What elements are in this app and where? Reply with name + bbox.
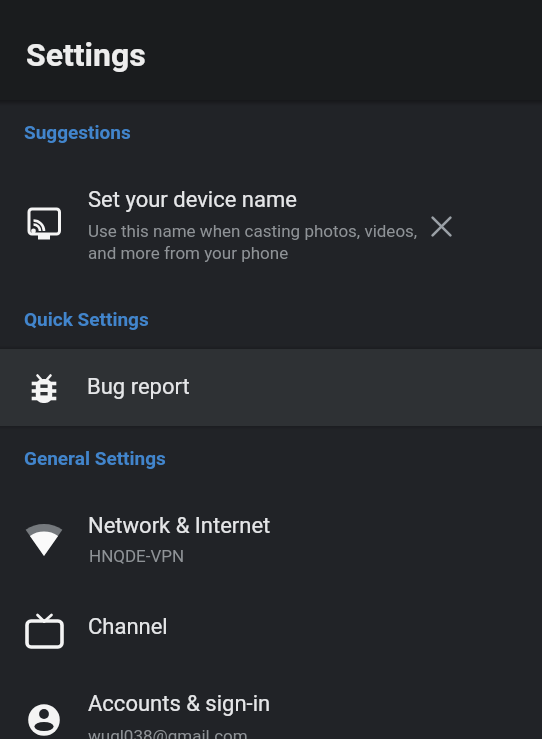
staticText: Channel bbox=[88, 614, 168, 640]
staticText: Accounts & sign-in bbox=[88, 691, 271, 717]
staticText: Use this name when casting photos, video… bbox=[88, 221, 418, 241]
staticText: wugl038@gmail.com bbox=[88, 726, 248, 739]
button[interactable]: Set your device name bbox=[0, 168, 542, 286]
button[interactable] bbox=[419, 204, 464, 249]
button[interactable]: Accounts & sign-in bbox=[0, 684, 542, 739]
staticText: Network & Internet bbox=[88, 513, 271, 539]
staticText: Bug report bbox=[87, 374, 190, 400]
staticText: Settings bbox=[26, 36, 146, 74]
staticText: HNQDE-VPN bbox=[89, 546, 185, 566]
staticText: Set your device name bbox=[88, 187, 297, 213]
staticText: Suggestions bbox=[24, 121, 131, 143]
button[interactable]: Channel bbox=[0, 598, 542, 668]
button[interactable]: Network & Internet bbox=[0, 498, 542, 584]
staticText: General Settings bbox=[24, 447, 166, 469]
staticText: and more from your phone bbox=[88, 243, 289, 263]
staticText: Quick Settings bbox=[24, 308, 149, 330]
button[interactable]: Bug report bbox=[0, 349, 542, 426]
